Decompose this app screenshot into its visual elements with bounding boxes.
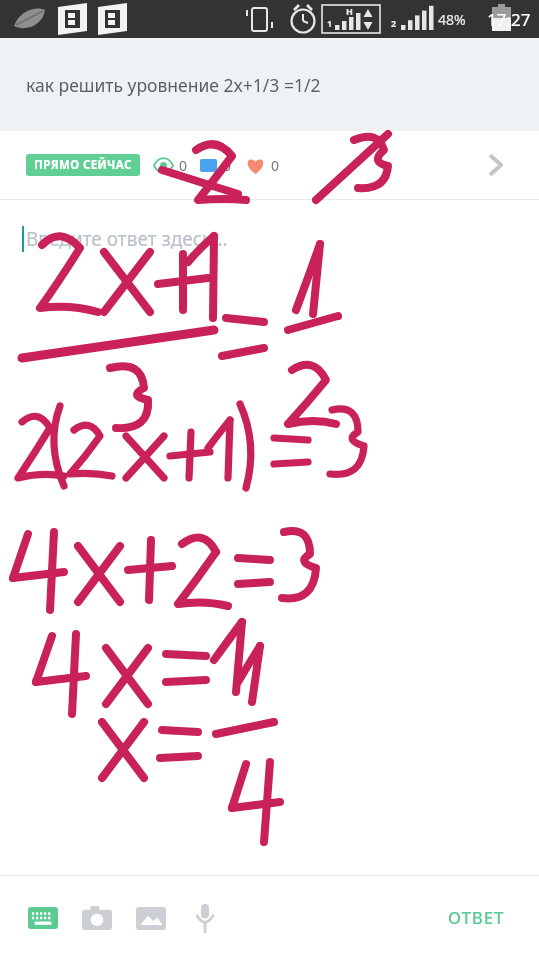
staticText: ПРЯМО СЕЙЧАС <box>34 157 132 173</box>
button[interactable]: Open question <box>479 148 513 182</box>
button[interactable]: Voice input <box>182 895 228 941</box>
button[interactable]: Введите ответ здесь... <box>0 200 539 875</box>
staticText: 0 <box>223 156 232 175</box>
staticText: H <box>346 5 353 17</box>
button[interactable]: как решить уровнение 2x+1/3 =1/2 <box>0 38 539 131</box>
staticText: Введите ответ здесь... <box>26 226 228 252</box>
staticText: 2 <box>391 17 397 29</box>
button[interactable]: Keyboard <box>20 895 66 941</box>
staticText: ОТВЕТ <box>448 906 505 929</box>
button[interactable]: ОТВЕТ <box>434 894 519 941</box>
staticText: 0 <box>271 156 280 175</box>
staticText: 48% <box>438 10 466 29</box>
staticText: 17:27 <box>487 8 531 31</box>
staticText: 1 <box>327 17 333 29</box>
button[interactable]: Gallery <box>128 895 174 941</box>
button[interactable]: Camera <box>74 895 120 941</box>
button[interactable]: ПРЯМО СЕЙЧАС <box>0 131 539 199</box>
staticText: 0 <box>179 156 188 175</box>
staticText: как решить уровнение 2x+1/3 =1/2 <box>26 73 321 97</box>
